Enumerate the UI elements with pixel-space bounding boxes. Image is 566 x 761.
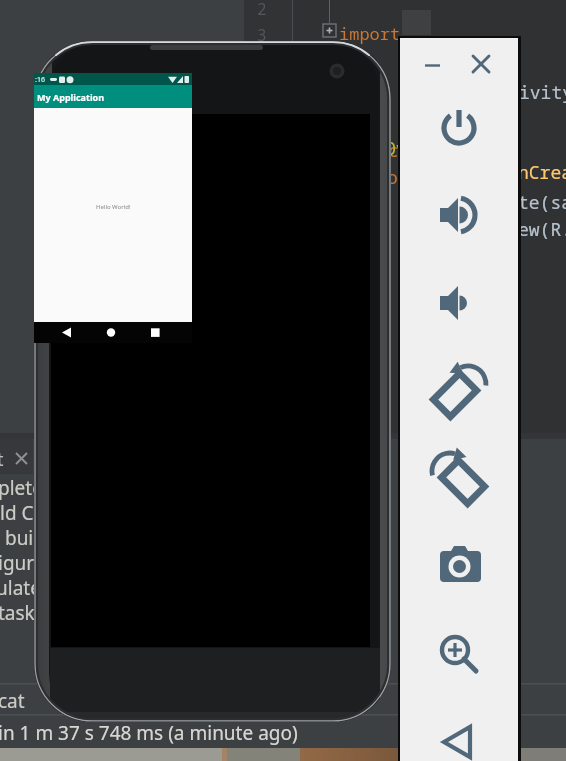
staticText: ld C: [0, 500, 34, 526]
button[interactable]: Close build panel: [12, 449, 32, 469]
staticText: t: [0, 447, 4, 472]
staticText: ivity: [519, 80, 566, 105]
staticText: igur: [0, 550, 35, 576]
staticText: in 1 m 37 s 748 ms (a minute ago): [0, 720, 298, 746]
staticText: 3: [257, 24, 267, 46]
staticText: c: [388, 138, 399, 163]
staticText: plete: [0, 475, 43, 501]
staticText: Hello World!: [96, 203, 131, 211]
button[interactable]: Minimize: [414, 47, 451, 84]
staticText: nCrea: [518, 160, 566, 185]
button[interactable]: Close: [462, 46, 500, 84]
button[interactable]: Volume up: [428, 184, 490, 246]
button[interactable]: Rotate left: [428, 360, 490, 422]
staticText: 2: [257, 0, 267, 20]
staticText: ulate: [0, 575, 41, 601]
button[interactable]: Power: [428, 97, 490, 159]
staticText: ew(R.: [518, 217, 566, 242]
button[interactable]: Back: [428, 710, 490, 761]
staticText: Ov: [385, 136, 407, 161]
staticText: :16: [35, 75, 45, 85]
staticText: te(sa: [518, 190, 566, 215]
staticText: My Application: [37, 91, 105, 103]
button[interactable]: Volume down: [428, 272, 490, 334]
button[interactable]: Rotate right: [428, 447, 490, 509]
button[interactable]: Take screenshot: [428, 535, 490, 597]
button[interactable]: Zoom in: [428, 623, 490, 685]
staticText: import: [339, 22, 401, 45]
staticText: o: [387, 165, 398, 190]
staticText: task: [0, 600, 35, 626]
staticText: bui: [0, 525, 34, 551]
staticText: cat: [0, 688, 25, 714]
